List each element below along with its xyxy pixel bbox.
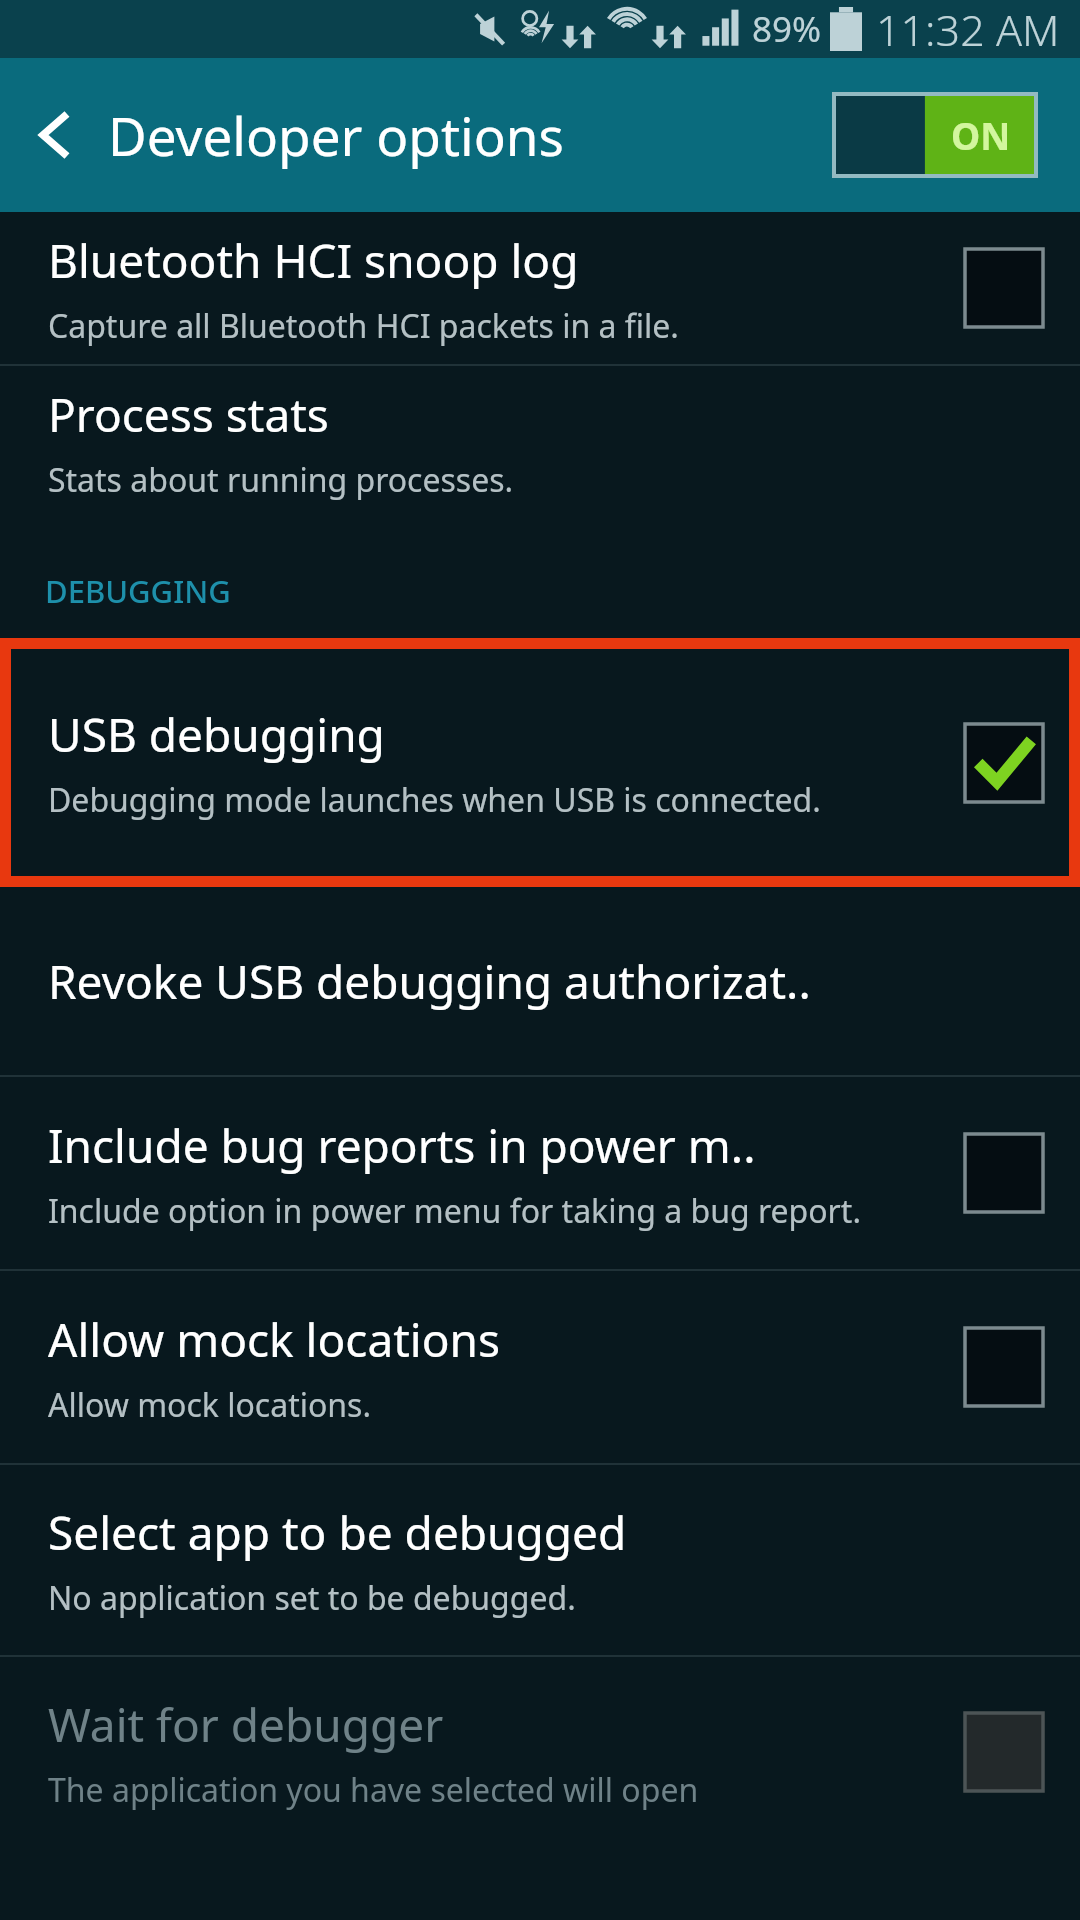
button[interactable]: Select app to be debugged [0,1465,1080,1655]
staticText: Include option in power menu for taking … [48,1189,861,1233]
staticText: Capture all Bluetooth HCI packets in a f… [48,304,679,348]
button[interactable]: Process stats [0,366,1080,518]
button[interactable]: Back [20,99,92,171]
staticText: The application you have selected will o… [48,1768,699,1812]
staticText: Allow mock locations. [48,1383,371,1427]
staticText: Developer options [108,99,564,171]
staticText: Revoke USB debugging authorizat.. [48,950,811,1013]
button[interactable]: Disabled [965,1713,1043,1791]
staticText: Process stats [48,383,329,446]
button[interactable]: Disabled [965,1134,1043,1212]
staticText: 89% [752,5,822,53]
staticText: Include bug reports in power m.. [48,1114,756,1177]
button[interactable]: Wait for debugger [0,1657,1080,1847]
staticText: ON [951,110,1011,160]
staticText: Stats about running processes. [48,458,514,502]
button[interactable]: Bluetooth HCI snoop log [0,212,1080,364]
staticText: No application set to be debugged. [48,1576,576,1620]
button[interactable]: Enabled [965,724,1043,802]
button[interactable]: Disabled [965,249,1043,327]
staticText: DEBUGGING [45,570,231,612]
button[interactable]: USB debugging [0,638,1080,887]
button[interactable]: Developer options toggle, on [834,94,1036,176]
staticText: USB debugging [48,703,385,766]
staticText: Select app to be debugged [48,1501,627,1564]
staticText: Bluetooth HCI snoop log [48,229,579,292]
staticText: Wait for debugger [48,1693,444,1756]
button[interactable]: Disabled [965,1328,1043,1406]
staticText: Allow mock locations [48,1308,500,1371]
button[interactable]: Allow mock locations [0,1271,1080,1463]
staticText: 11:32 AM [876,0,1060,58]
button[interactable]: Revoke USB debugging authorizat.. [0,887,1080,1075]
button[interactable]: Include bug reports in power m.. [0,1077,1080,1269]
staticText: Debugging mode launches when USB is conn… [48,778,821,822]
